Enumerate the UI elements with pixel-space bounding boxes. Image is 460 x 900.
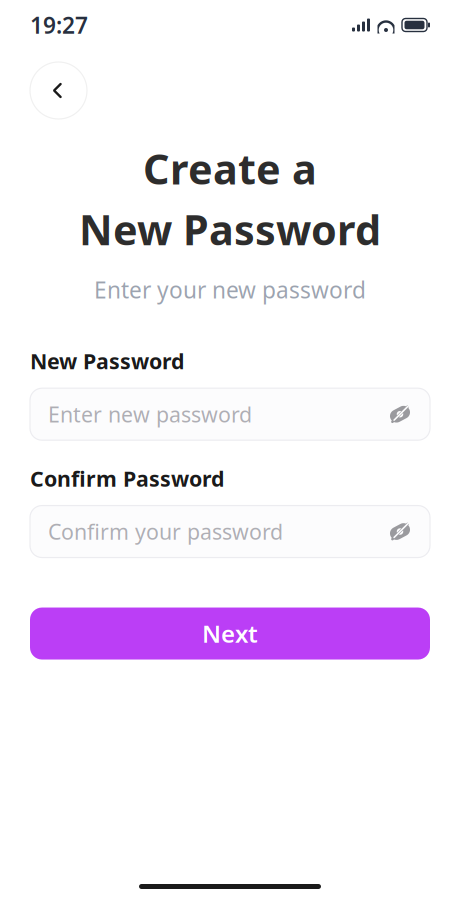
- staticText: Create a: [143, 141, 317, 196]
- button[interactable]: Back: [30, 62, 87, 119]
- staticText: Confirm your password: [48, 517, 283, 546]
- staticText: New Password: [79, 202, 381, 257]
- staticText: Confirm Password: [30, 464, 224, 492]
- button[interactable]: Next: [30, 607, 430, 659]
- staticText: Next: [202, 618, 258, 649]
- staticText: Enter your new password: [94, 275, 366, 305]
- button[interactable]: Confirm your password: [30, 505, 430, 557]
- staticText: 19:27: [30, 10, 88, 40]
- staticText: Enter new password: [48, 400, 252, 428]
- staticText: New Password: [30, 347, 184, 375]
- button[interactable]: Enter new password: [30, 388, 430, 440]
